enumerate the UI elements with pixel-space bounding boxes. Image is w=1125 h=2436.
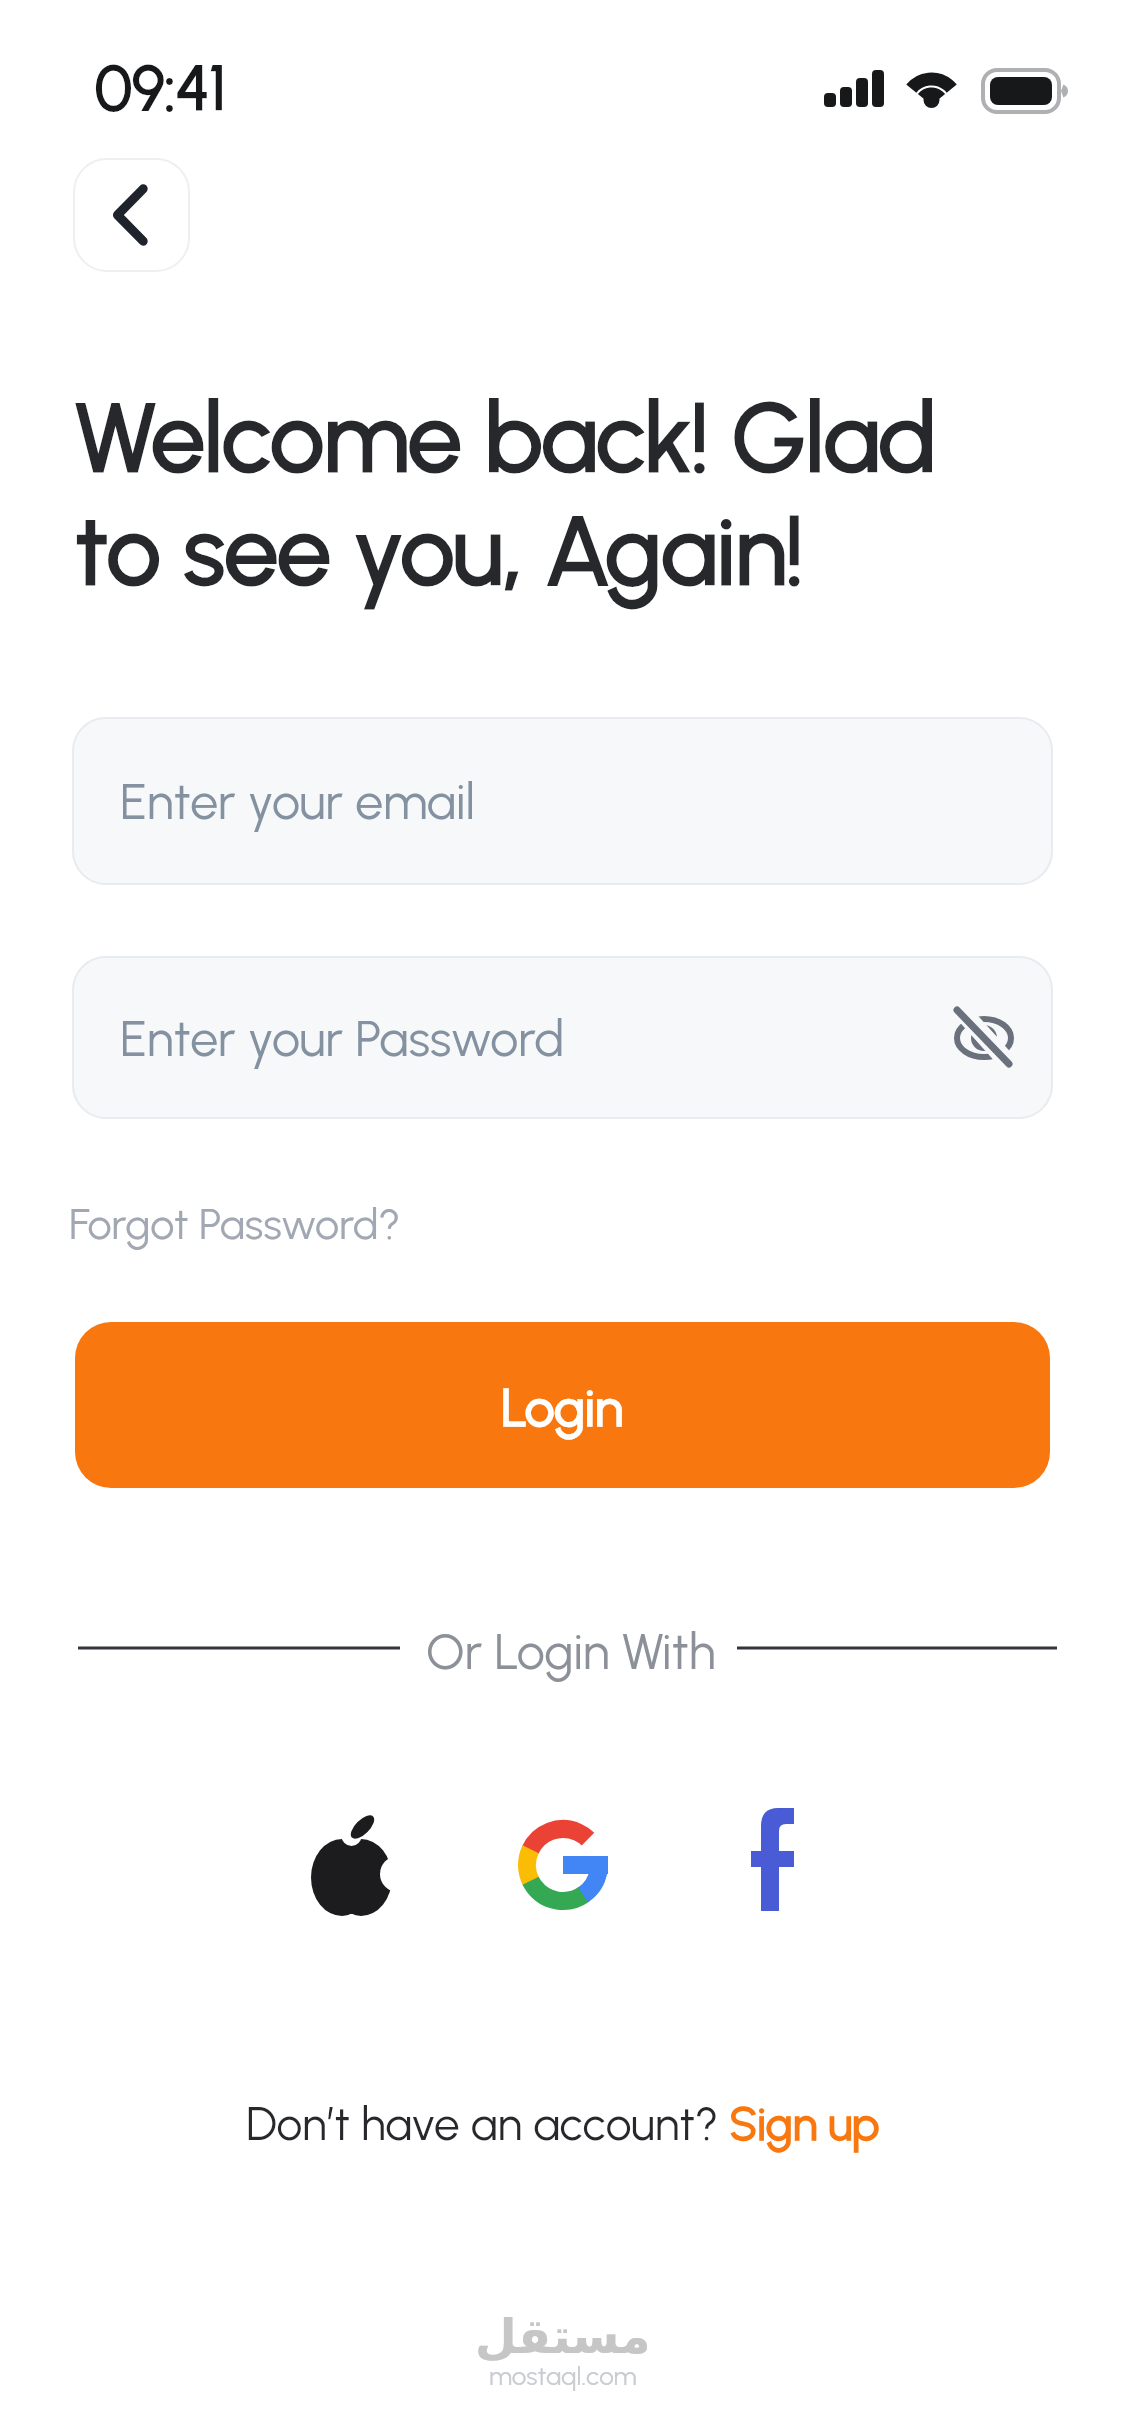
button[interactable]: Don’t have an account? Sign up [0,2096,1125,2151]
staticText: mostaql.com [489,2360,637,2391]
button[interactable]: Login [75,1322,1050,1488]
staticText: Welcome back! Glad to see you, Again! [75,380,937,608]
button[interactable] [73,158,190,272]
staticText: Don’t have an account? Sign up [246,2096,880,2151]
button[interactable]: Enter your email [72,717,1053,885]
button[interactable] [741,1798,804,1921]
staticText: Enter your Password [120,1008,565,1068]
staticText: Or Login With [426,1621,716,1681]
button[interactable]: Enter your Password [72,956,1053,1119]
staticText: مستقل [475,2308,651,2364]
staticText: Enter your email [120,771,476,831]
staticText: 09:41 [95,51,226,125]
button[interactable] [518,1820,608,1910]
button[interactable] [291,1788,411,1928]
staticText: Login [501,1376,624,1440]
button[interactable]: Forgot Password? [69,1198,401,1250]
